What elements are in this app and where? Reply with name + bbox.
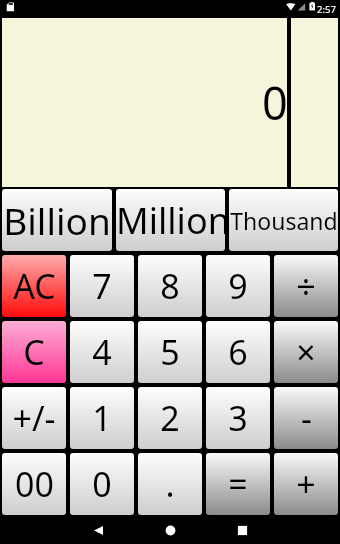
staticText: 2:57	[317, 3, 336, 16]
button[interactable]: 4	[70, 321, 134, 383]
staticText: +/-	[12, 395, 56, 441]
staticText: =	[228, 461, 248, 507]
staticText: C	[23, 329, 45, 375]
staticText: 9	[228, 263, 248, 309]
button[interactable]: +/-	[2, 387, 66, 449]
staticText: 2	[160, 395, 180, 441]
button[interactable]: 00	[2, 453, 66, 515]
button[interactable]: 1	[70, 387, 134, 449]
button[interactable]: 9	[206, 255, 270, 317]
button[interactable]: Back	[62, 517, 134, 544]
staticText: ÷	[296, 263, 316, 309]
button[interactable]: 0	[70, 453, 134, 515]
button[interactable]: 8	[138, 255, 202, 317]
button[interactable]: =	[206, 453, 270, 515]
staticText: 7	[92, 263, 112, 309]
button[interactable]: 5	[138, 321, 202, 383]
button[interactable]: 3	[206, 387, 270, 449]
staticText: 4	[92, 329, 112, 375]
staticText: 1	[92, 395, 112, 441]
button[interactable]: 6	[206, 321, 270, 383]
staticText: .	[165, 461, 175, 507]
staticText: 6	[228, 329, 248, 375]
button[interactable]: Home	[134, 517, 206, 544]
staticText: 00	[15, 461, 54, 507]
button[interactable]: -	[274, 387, 338, 449]
staticText: 0	[262, 72, 288, 133]
button[interactable]: Recent apps	[206, 517, 278, 544]
button[interactable]: ÷	[274, 255, 338, 317]
button[interactable]: Thousand	[229, 189, 338, 251]
staticText: Thousand	[230, 205, 338, 236]
staticText: AC	[13, 263, 56, 309]
staticText: Billion	[3, 195, 111, 245]
button[interactable]: Billion	[2, 189, 112, 251]
button[interactable]: AC	[2, 255, 66, 317]
button[interactable]: C	[2, 321, 66, 383]
button[interactable]: .	[138, 453, 202, 515]
staticText: +	[296, 461, 316, 507]
staticText: 3	[228, 395, 248, 441]
button[interactable]: 7	[70, 255, 134, 317]
button[interactable]: Million	[116, 189, 225, 251]
staticText: 0	[92, 461, 112, 507]
staticText: ×	[296, 329, 316, 375]
staticText: 8	[160, 263, 180, 309]
staticText: 5	[160, 329, 180, 375]
button[interactable]: +	[274, 453, 338, 515]
button[interactable]: ×	[274, 321, 338, 383]
button[interactable]: 2	[138, 387, 202, 449]
staticText: -	[301, 395, 312, 441]
staticText: Million	[116, 196, 225, 245]
